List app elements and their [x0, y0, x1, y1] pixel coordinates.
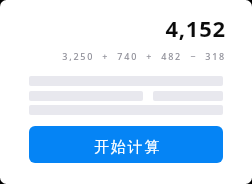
- button[interactable]: 开始计算: [29, 126, 223, 163]
- staticText: 3,250 + 740 + 482 − 318: [0, 50, 226, 62]
- staticText: 4,152: [0, 13, 226, 43]
- staticText: 开始计算: [94, 138, 162, 157]
